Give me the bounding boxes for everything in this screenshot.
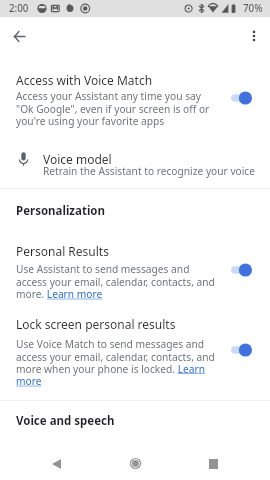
button[interactable]: Back [38,447,74,480]
button[interactable]: Back [4,21,34,51]
staticText: Use Voice Match to send messages and acc… [16,337,215,388]
staticText: 2:00 [9,2,29,15]
staticText: Lock screen personal results [16,316,176,332]
staticText: Access your Assistant any time you say "… [16,89,215,128]
staticText: Personalization [16,203,105,219]
staticText: Voice and speech [16,413,115,429]
staticText: Use Assistant to send messages and acces… [16,262,215,301]
button[interactable]: Personal Results [0,219,270,309]
button[interactable]: Lock screen personal results [0,309,270,396]
staticText: Voice model [43,151,112,167]
button[interactable]: Voice model [0,139,270,188]
button[interactable]: Access with Voice Match [0,55,270,139]
staticText: Retrain the Assistant to recognize your … [43,164,255,178]
staticText: Personal Results [16,243,109,259]
staticText: 70% [243,2,263,15]
button[interactable]: Home [117,447,153,480]
button[interactable]: More options [239,21,269,51]
button[interactable]: Recent apps [195,447,231,480]
staticText: Access with Voice Match [16,72,153,88]
